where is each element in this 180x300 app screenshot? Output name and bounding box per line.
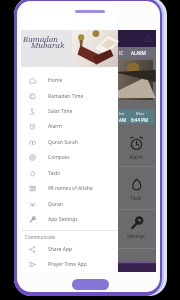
button[interactable]: 99 names of Allaha — [17, 181, 118, 196]
staticText: ALARM — [131, 50, 146, 56]
button[interactable]: Settings — [125, 216, 147, 240]
staticText: Quran — [48, 201, 63, 208]
staticText: App Settings — [48, 216, 78, 223]
button[interactable]: Tasbi — [125, 177, 147, 201]
staticText: Communicate — [25, 234, 56, 240]
button[interactable]: Compass — [17, 150, 118, 165]
staticText: hri — [119, 111, 125, 116]
button[interactable]: App Settings — [17, 212, 118, 227]
button[interactable]: Alarm — [17, 119, 118, 134]
staticText: Home — [48, 77, 63, 84]
staticText: 99 names of Allaha — [48, 185, 93, 192]
staticText: Tasbi — [48, 170, 60, 177]
button[interactable]: App logo — [144, 35, 151, 42]
staticText: Alarm — [48, 123, 63, 130]
button[interactable]: Tasbi — [17, 166, 118, 181]
button[interactable]: Quran Surah — [17, 135, 118, 150]
button[interactable]: Home — [72, 279, 109, 290]
button[interactable]: Ramadan Time — [17, 89, 118, 104]
button[interactable]: Quran — [17, 197, 118, 212]
staticText: 6:44 PM — [131, 117, 149, 123]
staticText: Compass — [48, 154, 70, 161]
staticText: Mubarak — [31, 40, 65, 51]
staticText: Salat Time — [48, 108, 73, 115]
button[interactable]: Alarm — [125, 136, 147, 160]
staticText: Tasbi — [125, 195, 147, 201]
staticText: Alarm — [125, 154, 147, 160]
button[interactable]: Share App — [17, 242, 118, 257]
staticText: Ramadan — [23, 34, 58, 45]
staticText: Iftar — [136, 111, 145, 116]
staticText: Quran Surah — [48, 139, 78, 146]
button[interactable]: Home — [17, 73, 118, 88]
staticText: Prayer Time App — [48, 261, 87, 268]
button[interactable]: Prayer Time App — [17, 257, 118, 272]
staticText: Ramadan Time — [48, 93, 84, 100]
staticText: Settings — [125, 233, 147, 239]
button[interactable]: Salat Time — [17, 104, 118, 119]
staticText: Share App — [48, 246, 73, 253]
staticText: IC — [119, 50, 124, 56]
staticText: AM — [119, 117, 127, 123]
